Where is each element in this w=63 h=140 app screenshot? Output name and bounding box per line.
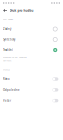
- button[interactable]: Back: [0, 6, 9, 15]
- staticText: Syntetický: [3, 38, 15, 41]
- staticText: Ráno: [3, 77, 10, 81]
- staticText: Přehrává se při spuštění aplikace.: [3, 56, 27, 62]
- button[interactable]: Žádný: [0, 24, 63, 34]
- staticText: Přehrát: [3, 68, 10, 71]
- button[interactable]: Tradiční: [0, 45, 63, 55]
- button[interactable]: Odpoledne: [0, 84, 63, 95]
- button[interactable]: Večer: [0, 95, 63, 106]
- staticText: Tradiční: [3, 48, 13, 52]
- staticText: Styl hudby: [3, 18, 13, 21]
- button[interactable]: Ráno: [0, 74, 63, 84]
- staticText: Večer: [3, 99, 11, 102]
- staticText: Žádný: [3, 27, 11, 31]
- staticText: Druk pro hudbu: [9, 8, 33, 12]
- button[interactable]: Syntetický: [0, 34, 63, 45]
- staticText: Odpoledne: [3, 88, 20, 92]
